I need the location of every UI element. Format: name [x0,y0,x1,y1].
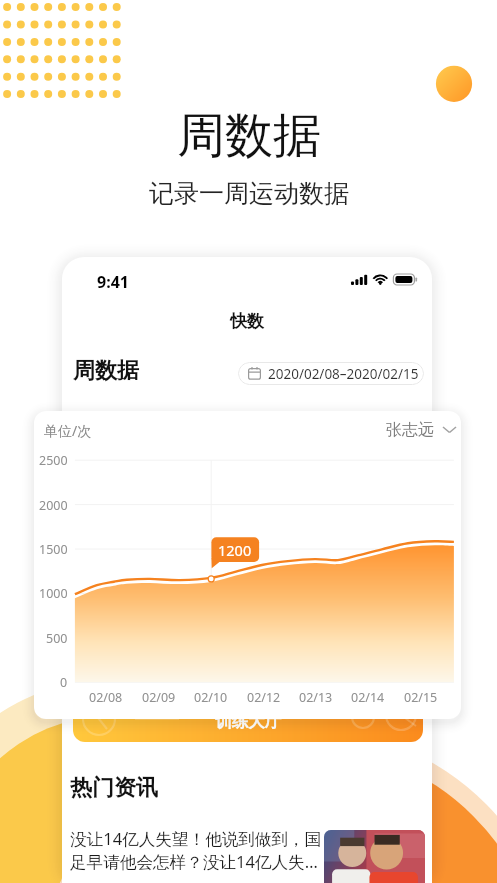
staticText: 张志远 [386,420,434,440]
staticText: 周数据 [177,106,321,166]
staticText: 0 [60,674,68,690]
staticText: 快数 [230,311,264,332]
staticText: 9:41 [97,271,129,293]
button[interactable]: 训练大厅 [73,701,423,742]
button[interactable]: 2020/02/08–2020/02/15 [238,362,424,385]
staticText: 1200 [218,540,252,560]
staticText: 单位/次 [44,421,92,440]
staticText: 1000 [39,585,68,601]
staticText: 1500 [39,541,68,557]
staticText: 02/09 [142,689,176,705]
staticText: 训练大厅 [215,711,281,732]
staticText: 2000 [39,497,68,513]
staticText: 记录一周运动数据 [149,178,349,209]
staticText: 2500 [39,452,68,468]
button[interactable]: 没让14亿人失望！他说到做到，国 足早请他会怎样？没让14亿人失… [70,827,332,872]
staticText: 热门资讯 [70,774,158,802]
staticText: 没让14亿人失望！他说到做到，国 足早请他会怎样？没让14亿人失… [70,827,322,872]
staticText: 500 [46,630,68,646]
staticText: 2020/02/08–2020/02/15 [268,365,419,383]
staticText: 02/08 [89,689,123,705]
staticText: 02/15 [404,689,438,705]
button[interactable]: 张志远 [386,420,456,440]
staticText: 02/10 [194,689,228,705]
staticText: 02/14 [351,689,385,705]
staticText: 周数据 [73,357,139,385]
staticText: 02/13 [299,689,333,705]
staticText: 02/12 [247,689,281,705]
